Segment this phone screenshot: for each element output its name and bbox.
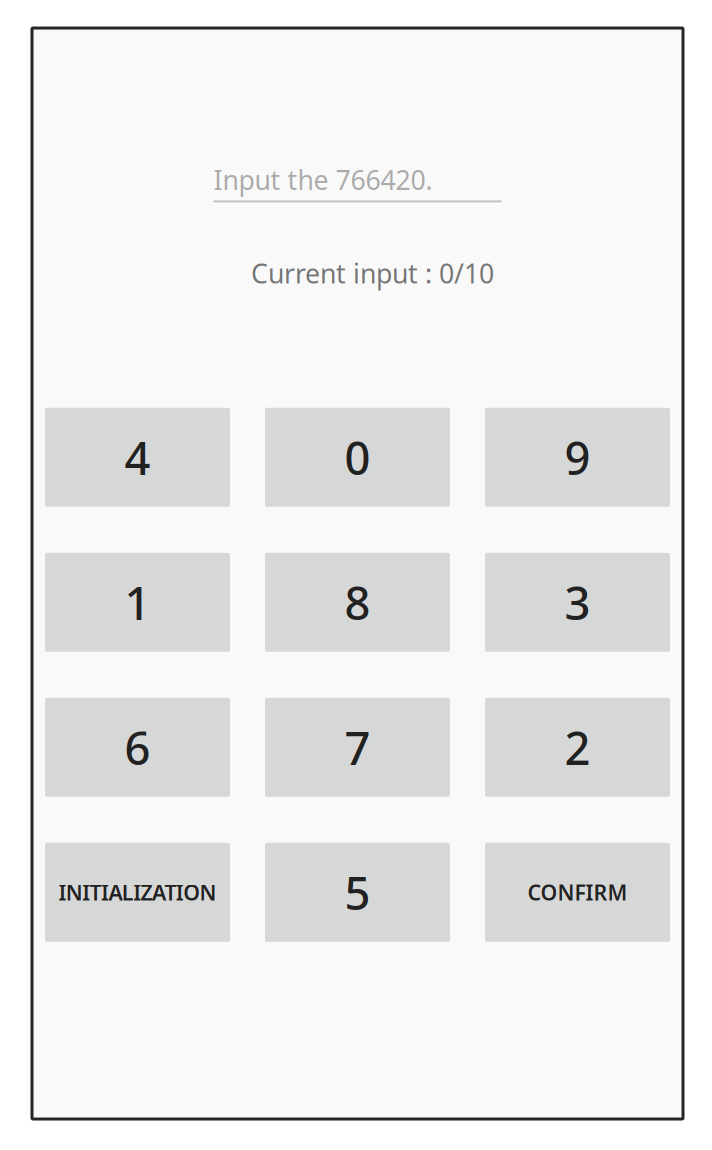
staticText: 0 <box>344 427 370 487</box>
staticText: 1 <box>124 572 150 632</box>
button[interactable]: INITIALIZATION <box>45 843 230 942</box>
button[interactable]: 2 <box>485 698 670 797</box>
button[interactable]: 4 <box>45 408 230 507</box>
staticText: CONFIRM <box>527 878 627 906</box>
button[interactable]: 8 <box>265 553 450 652</box>
button[interactable]: 7 <box>265 698 450 797</box>
staticText: 5 <box>344 862 370 922</box>
button[interactable]: Input the 766420. <box>213 162 501 202</box>
button[interactable]: 0 <box>265 408 450 507</box>
staticText: Current input : 0/10 <box>251 255 494 291</box>
staticText: 8 <box>344 572 370 632</box>
staticText: Input the 766420. <box>213 162 432 197</box>
button[interactable]: 3 <box>485 553 670 652</box>
button[interactable]: 6 <box>45 698 230 797</box>
button[interactable]: 5 <box>265 843 450 942</box>
staticText: 2 <box>564 717 590 777</box>
button[interactable]: 1 <box>45 553 230 652</box>
staticText: 7 <box>344 717 370 777</box>
staticText: 9 <box>564 427 590 487</box>
button[interactable]: CONFIRM <box>485 843 670 942</box>
staticText: INITIALIZATION <box>58 878 217 906</box>
staticText: 4 <box>124 427 150 487</box>
staticText: 6 <box>124 717 150 777</box>
staticText: 3 <box>564 572 590 632</box>
button[interactable]: 9 <box>485 408 670 507</box>
